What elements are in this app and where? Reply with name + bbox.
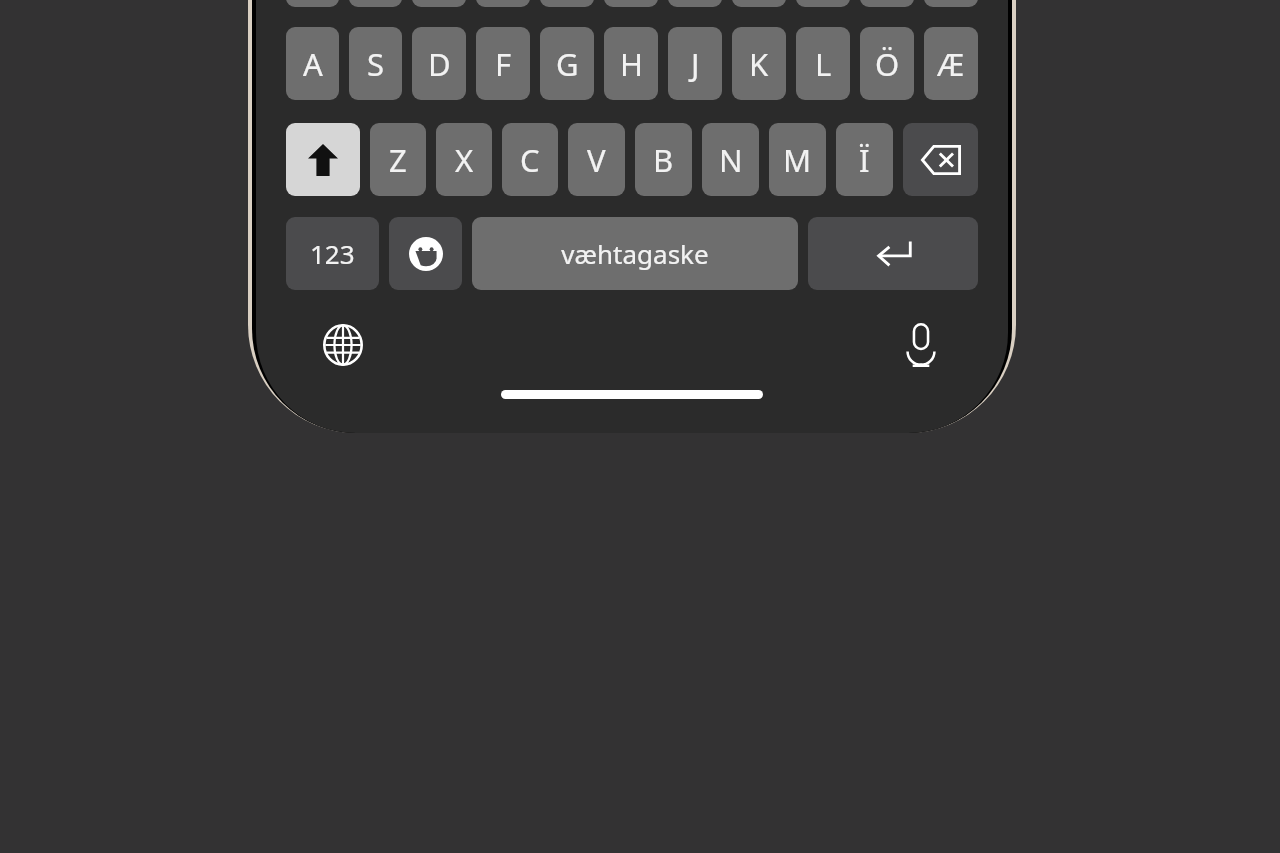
button[interactable]: U	[668, 0, 722, 7]
staticText: S	[367, 43, 385, 85]
button[interactable]: N	[702, 123, 759, 196]
button[interactable]: væhtagaske	[472, 217, 798, 290]
button[interactable]: G	[540, 27, 594, 100]
staticText: V	[587, 139, 606, 181]
button[interactable]: E	[412, 0, 466, 7]
button[interactable]: Å	[924, 0, 978, 7]
button[interactable]: S	[349, 27, 402, 100]
button[interactable]: O	[796, 0, 850, 7]
staticText: Ï	[859, 139, 870, 181]
staticText: 123	[310, 236, 355, 271]
button[interactable]: 123	[286, 217, 379, 290]
staticText: N	[719, 139, 743, 181]
button[interactable]: Æ	[924, 27, 978, 100]
staticText: X	[455, 139, 474, 181]
staticText: H	[620, 43, 643, 85]
button[interactable]: Y	[604, 0, 658, 7]
button[interactable]: V	[568, 123, 625, 196]
button[interactable]: R	[476, 0, 530, 7]
button[interactable]: D	[412, 27, 466, 100]
button[interactable]: K	[732, 27, 786, 100]
staticText: G	[556, 43, 579, 85]
button[interactable]: Ï	[836, 123, 893, 196]
button[interactable]: W	[349, 0, 402, 7]
button[interactable]: B	[635, 123, 692, 196]
staticText: K	[749, 43, 769, 85]
button[interactable]: X	[436, 123, 492, 196]
button[interactable]: Ö	[860, 27, 914, 100]
button[interactable]: J	[668, 27, 722, 100]
button[interactable]: Return	[808, 217, 978, 290]
button[interactable]: M	[769, 123, 826, 196]
staticText: B	[653, 139, 674, 181]
staticText: væhtagaske	[561, 236, 709, 271]
staticText: F	[495, 43, 512, 85]
button[interactable]: Change keyboard	[314, 316, 372, 374]
button[interactable]: Backspace	[903, 123, 978, 196]
button[interactable]: T	[540, 0, 594, 7]
staticText: C	[520, 139, 540, 181]
button[interactable]: Q	[286, 0, 339, 7]
staticText: M	[783, 139, 812, 181]
button[interactable]: L	[796, 27, 850, 100]
staticText: A	[303, 43, 323, 85]
staticText: J	[691, 43, 700, 85]
staticText: Z	[389, 139, 407, 181]
button[interactable]: H	[604, 27, 658, 100]
button[interactable]: Shift	[286, 123, 360, 196]
button[interactable]: A	[286, 27, 339, 100]
button[interactable]: Emoji	[389, 217, 462, 290]
button[interactable]: F	[476, 27, 530, 100]
staticText: Æ	[937, 43, 965, 85]
button[interactable]: Dictate	[892, 316, 950, 374]
button[interactable]: P	[860, 0, 914, 7]
button[interactable]: C	[502, 123, 558, 196]
button[interactable]: I	[732, 0, 786, 7]
staticText: L	[815, 43, 832, 85]
staticText: Ö	[875, 43, 900, 85]
button[interactable]: Z	[370, 123, 426, 196]
staticText: D	[428, 43, 451, 85]
